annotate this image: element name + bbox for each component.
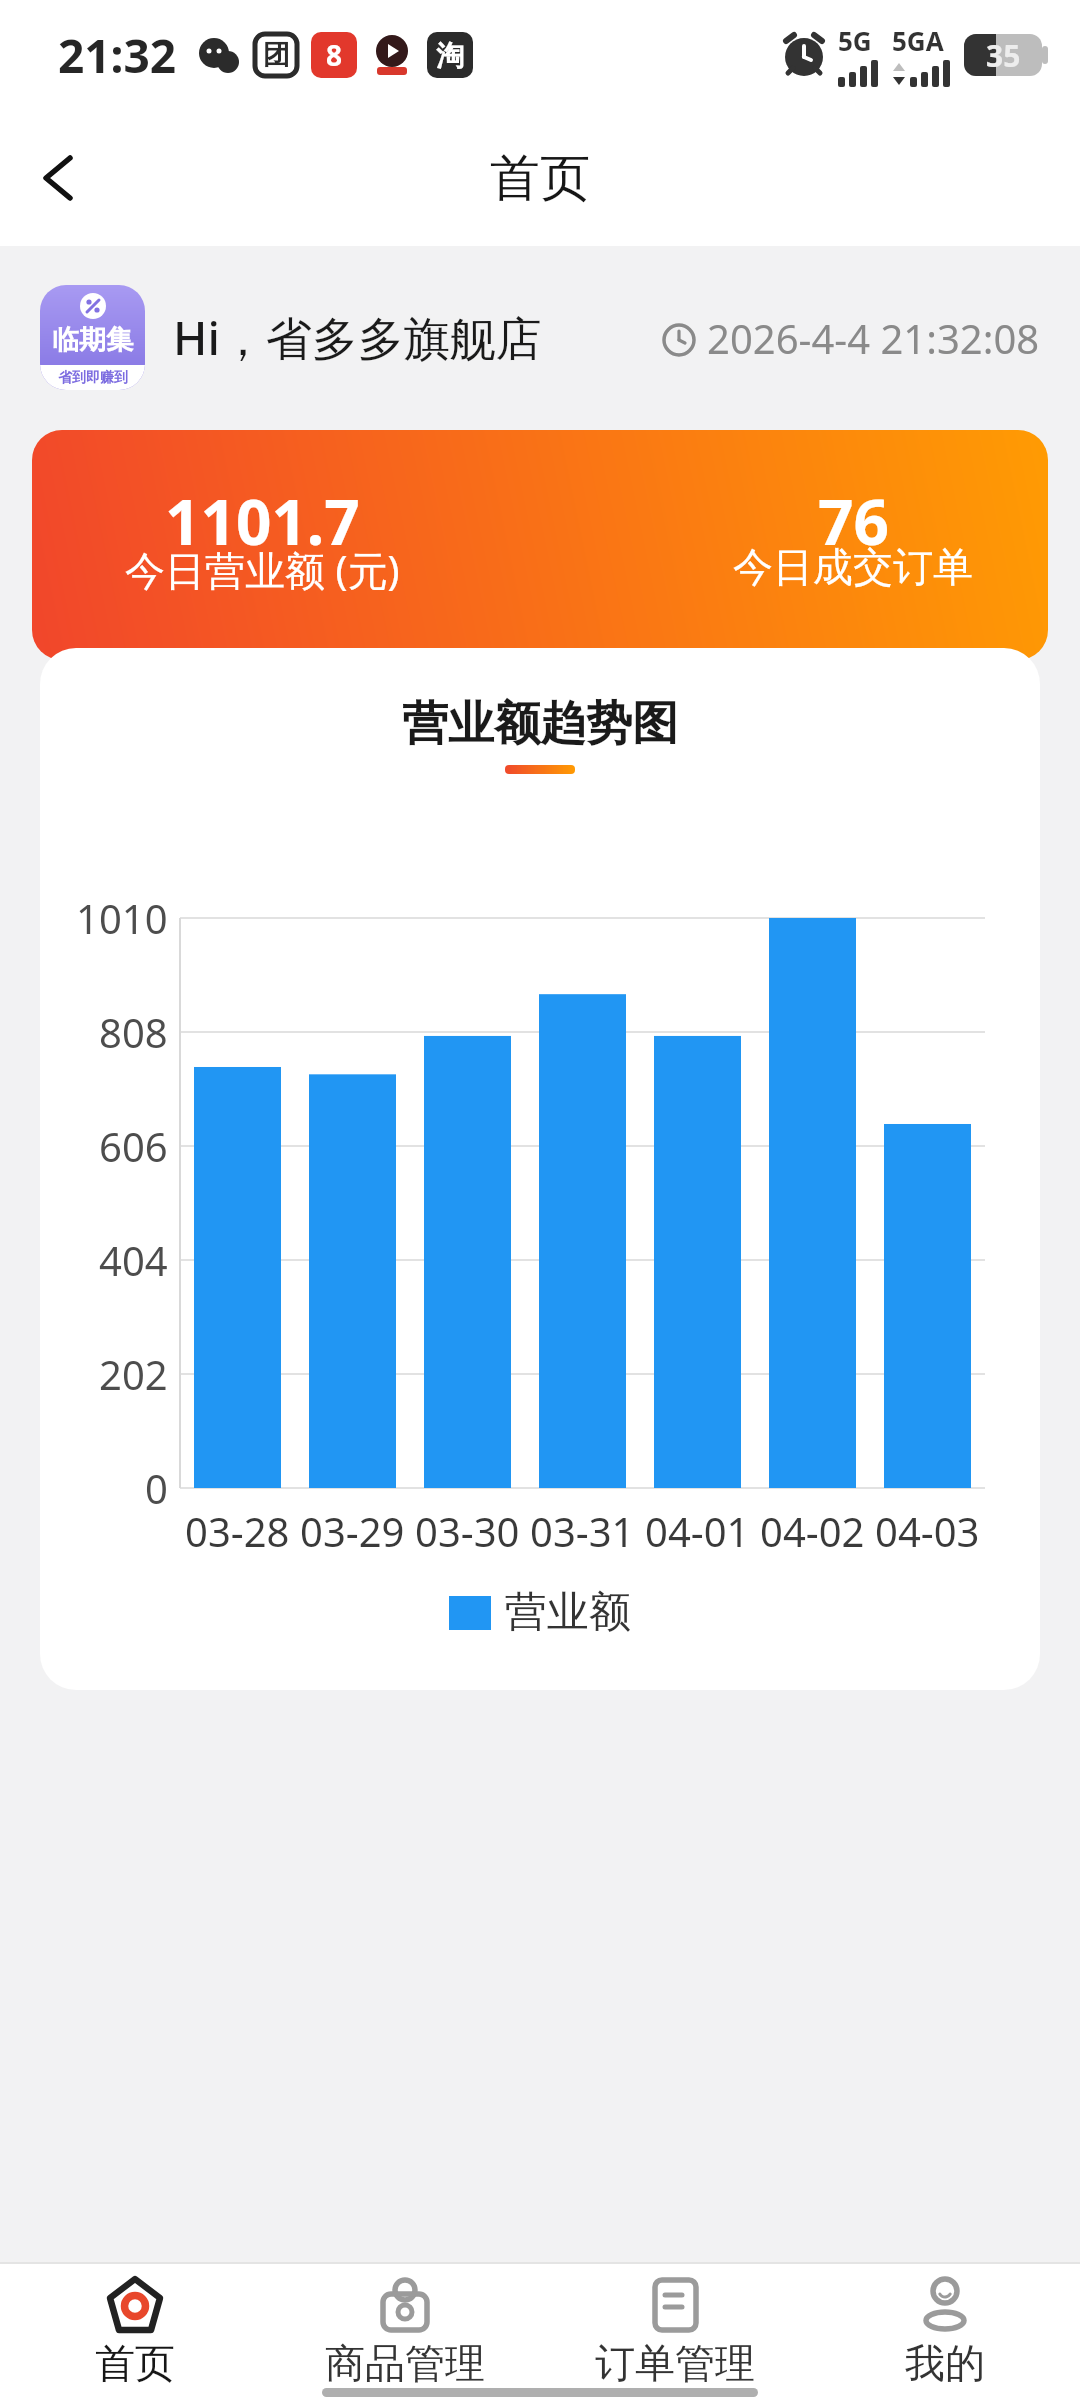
button[interactable]: 我的: [810, 2262, 1080, 2400]
staticText: 04-03: [875, 1504, 980, 1558]
staticText: 04-01: [645, 1504, 750, 1558]
staticText: 1010: [76, 891, 168, 945]
staticText: 404: [99, 1233, 168, 1287]
staticText: 订单管理: [595, 2338, 755, 2388]
staticText: Hi，省多多旗舰店: [173, 306, 542, 369]
staticText: 1101.7: [165, 479, 360, 563]
staticText: 临期集: [52, 323, 133, 357]
staticText: 04-02: [760, 1504, 865, 1558]
staticText: 03-30: [415, 1504, 520, 1558]
button[interactable]: [24, 142, 96, 214]
staticText: 5GA: [892, 23, 944, 58]
staticText: 0: [145, 1461, 168, 1515]
staticText: 营业额趋势图: [402, 695, 678, 753]
staticText: 03-31: [530, 1504, 635, 1558]
staticText: 76: [818, 479, 889, 563]
staticText: 团: [263, 38, 290, 72]
button[interactable]: 订单管理: [540, 2262, 810, 2400]
staticText: 营业额: [505, 1586, 631, 1639]
staticText: 淘: [436, 38, 464, 73]
staticText: 21:32: [58, 24, 177, 87]
staticText: 03-28: [185, 1504, 290, 1558]
staticText: 我的: [905, 2338, 985, 2388]
staticText: 606: [99, 1119, 168, 1173]
button[interactable]: 临期集: [40, 285, 1040, 390]
staticText: 808: [99, 1005, 168, 1059]
staticText: 8: [326, 36, 343, 74]
staticText: 202: [99, 1347, 168, 1401]
staticText: 03-29: [300, 1504, 405, 1558]
staticText: 省到即赚到: [58, 369, 128, 387]
staticText: 商品管理: [325, 2338, 485, 2388]
staticText: 5G: [838, 23, 872, 58]
staticText: 首页: [490, 147, 590, 210]
staticText: 今日营业额 (元): [125, 542, 400, 597]
button[interactable]: 1101.7: [32, 430, 1048, 660]
staticText: 35: [986, 35, 1021, 76]
staticText: 2026-4-4 21:32:08: [707, 311, 1040, 365]
button[interactable]: 首页: [0, 2262, 270, 2400]
staticText: 首页: [95, 2338, 175, 2388]
button[interactable]: 商品管理: [270, 2262, 540, 2400]
staticText: 今日成交订单: [733, 542, 973, 592]
